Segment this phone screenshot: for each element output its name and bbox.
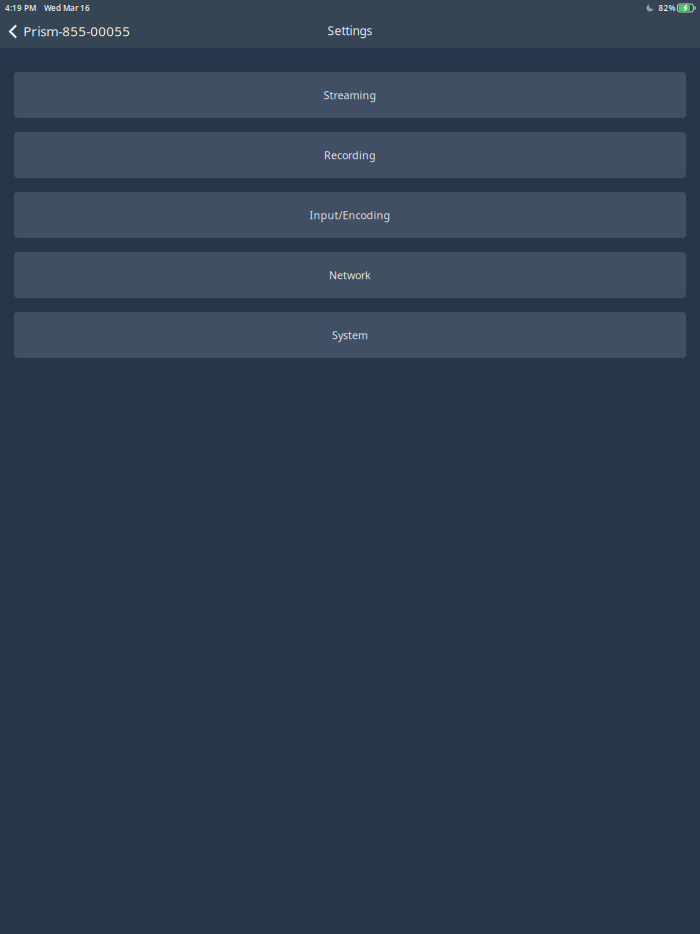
staticText: Network: [329, 268, 371, 282]
staticText: Wed Mar 16: [44, 3, 90, 13]
button[interactable]: System: [14, 312, 686, 358]
staticText: 4:19 PM: [5, 3, 36, 13]
staticText: Recording: [324, 148, 376, 162]
staticText: Input/Encoding: [309, 208, 390, 222]
button[interactable]: Input/Encoding: [14, 192, 686, 238]
staticText: 82%: [658, 3, 675, 13]
staticText: System: [332, 328, 368, 342]
staticText: Prism-855-00055: [23, 22, 130, 40]
button[interactable]: Recording: [14, 132, 686, 178]
staticText: Settings: [327, 22, 372, 38]
button[interactable]: Back to Prism-855-00055: [0, 16, 142, 48]
button[interactable]: Network: [14, 252, 686, 298]
button[interactable]: Streaming: [14, 72, 686, 118]
staticText: Streaming: [323, 88, 376, 102]
